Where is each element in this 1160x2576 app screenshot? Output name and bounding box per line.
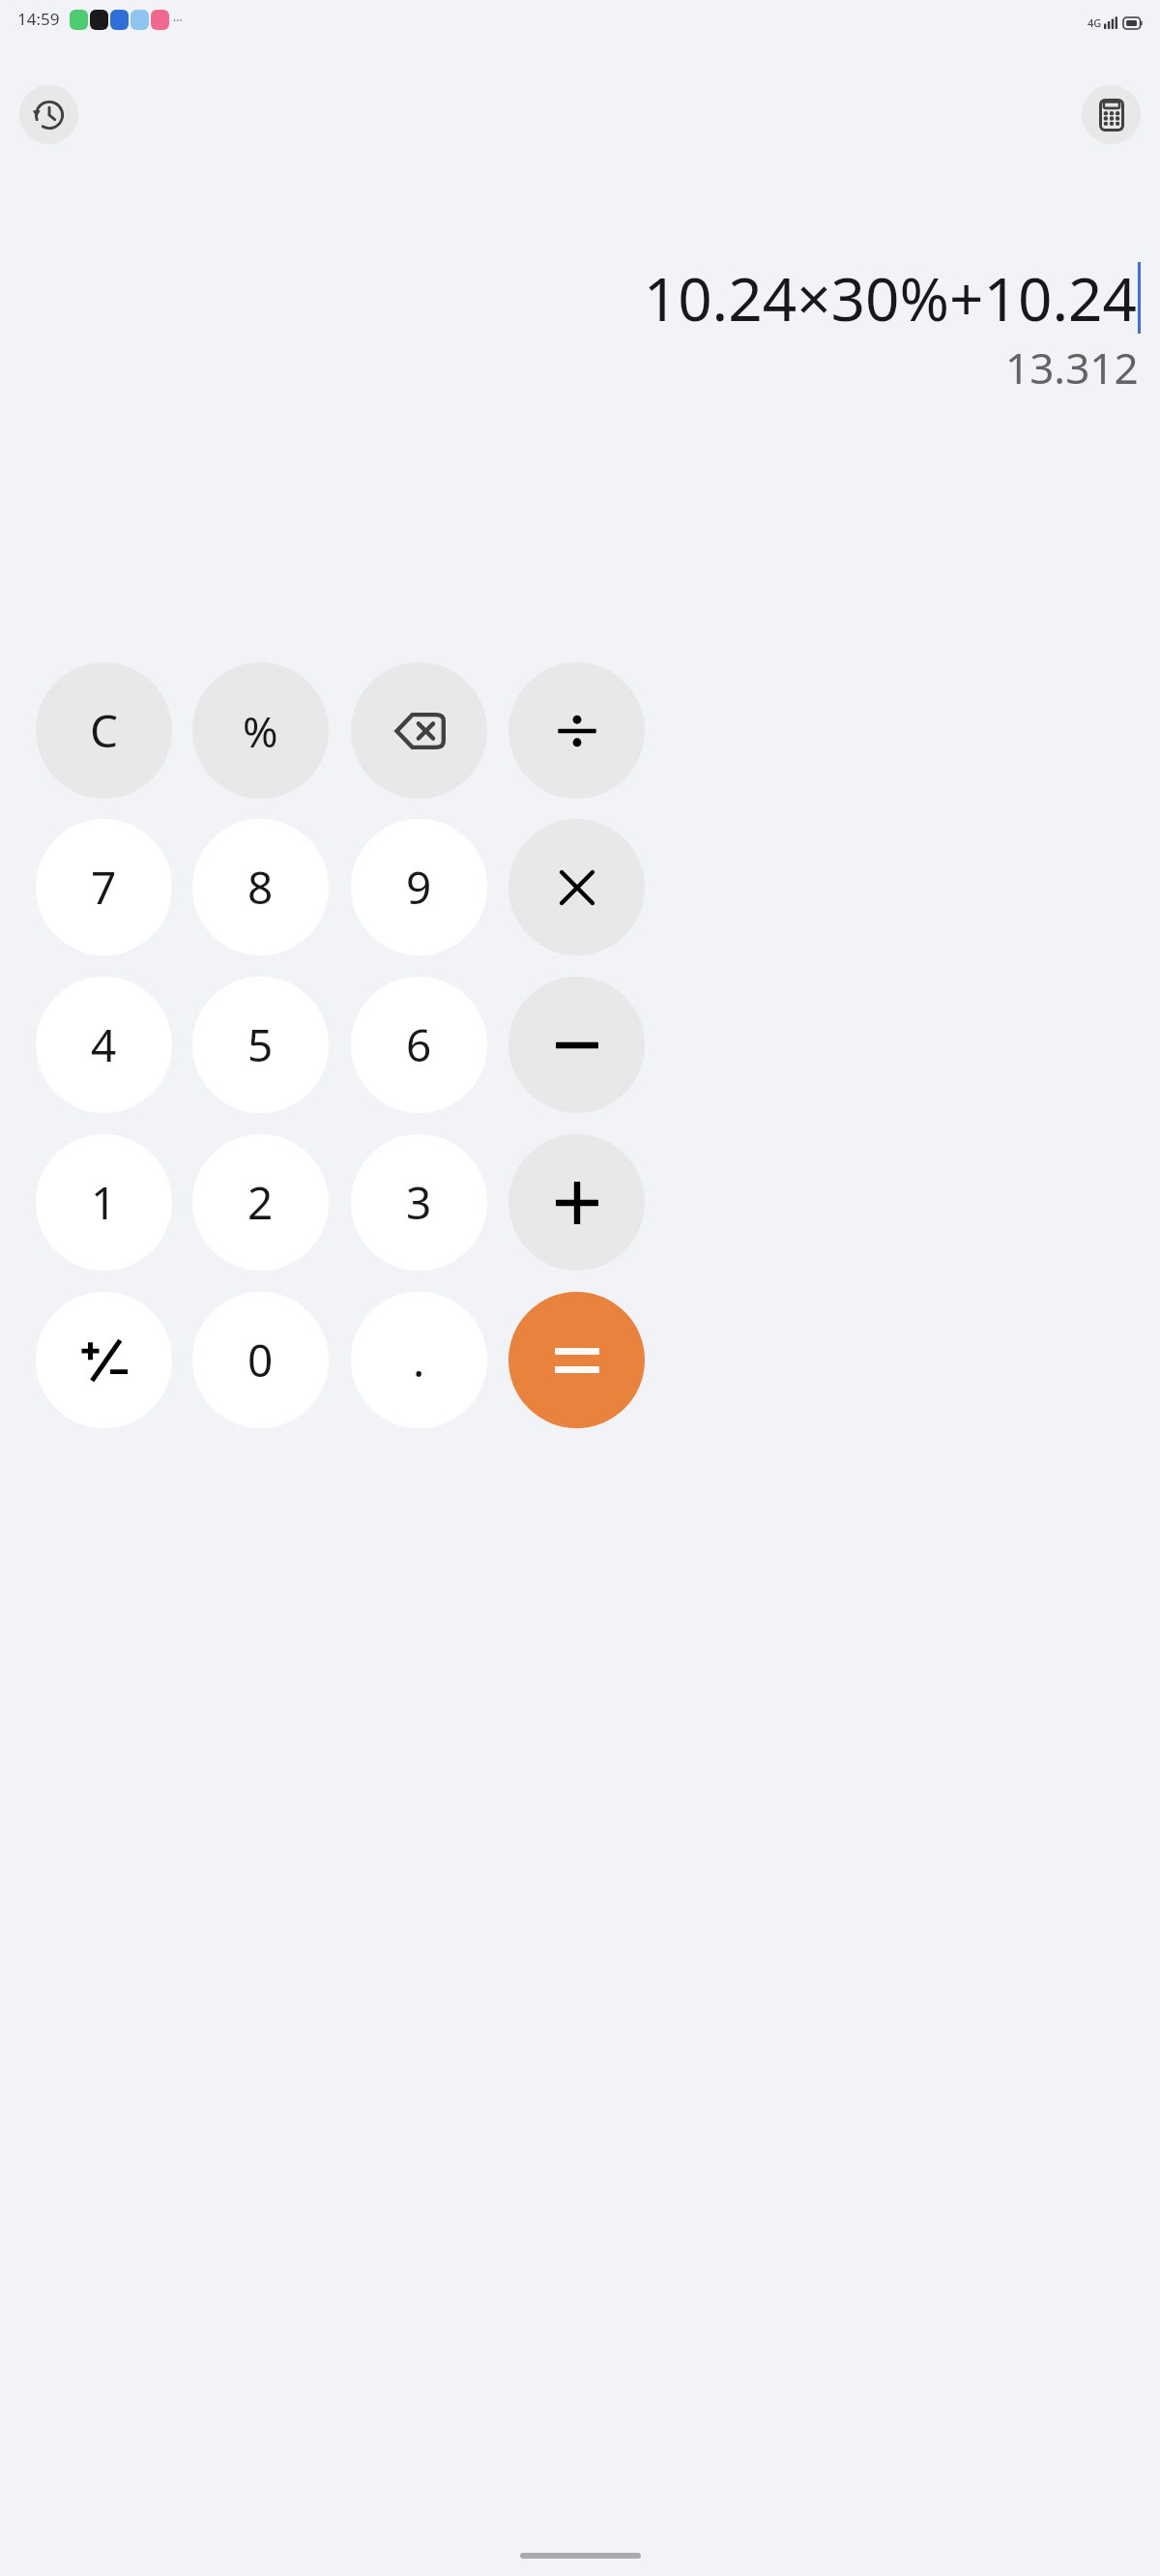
button[interactable]: % [192,662,329,799]
staticText: 2 [247,1172,274,1233]
button[interactable]: Minus [508,977,645,1113]
button[interactable]: 2 [192,1134,329,1271]
button[interactable]: 8 [192,819,329,955]
staticText: 13.312 [1005,338,1139,396]
staticText: 0 [247,1330,274,1390]
button[interactable]: 6 [351,977,487,1113]
staticText: 10.24×30%+10.24 [643,257,1137,338]
button[interactable]: . [351,1292,487,1428]
button[interactable]: 5 [192,977,329,1113]
staticText: 1 [91,1172,117,1233]
button[interactable]: Multiply [508,819,645,955]
button[interactable]: Plus minus sign [36,1292,172,1428]
staticText: 4 [91,1014,117,1075]
staticText: 4G [1087,15,1102,30]
button[interactable]: C [36,662,172,799]
staticText: C [90,700,119,761]
staticText: . [413,1330,425,1390]
button[interactable]: Scientific calculator [1082,85,1141,144]
staticText: 8 [247,857,274,918]
button[interactable]: History [19,85,78,144]
button[interactable]: Divide [508,662,645,799]
staticText: ··· [173,13,183,28]
staticText: 6 [406,1014,432,1075]
staticText: 3 [406,1172,432,1233]
button[interactable]: 1 [36,1134,172,1271]
staticText: 14:59 [17,8,60,30]
button[interactable]: Plus [508,1134,645,1271]
button[interactable]: 9 [351,819,487,955]
button[interactable]: 4 [36,977,172,1113]
staticText: 9 [406,857,432,918]
staticText: 7 [91,857,117,918]
button[interactable]: Equals [508,1292,645,1428]
button[interactable]: 3 [351,1134,487,1271]
staticText: % [243,702,278,760]
button[interactable]: 7 [36,819,172,955]
button[interactable]: Backspace [351,662,487,799]
staticText: 5 [247,1014,274,1075]
button[interactable]: 0 [192,1292,329,1428]
